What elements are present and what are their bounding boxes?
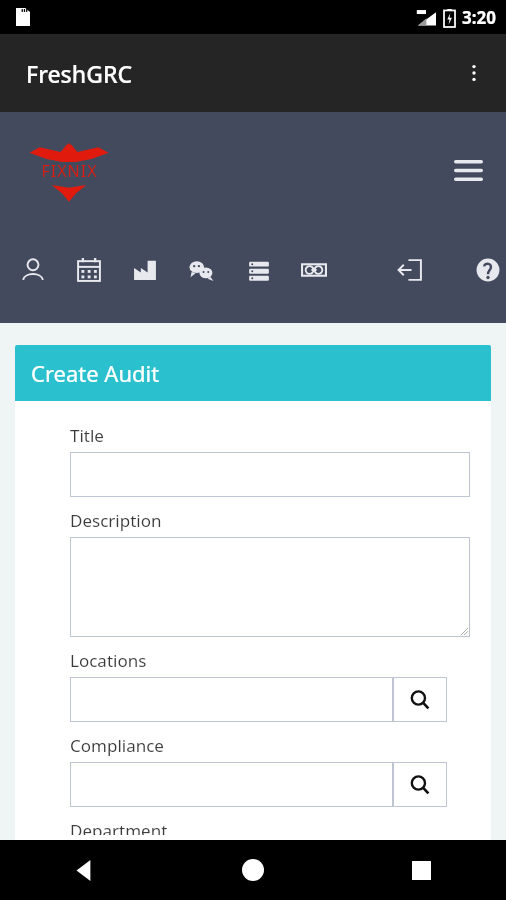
button[interactable]: Recents bbox=[337, 840, 506, 900]
button[interactable]: Calendar bbox=[73, 254, 105, 286]
staticText: Description bbox=[70, 509, 162, 532]
button[interactable]: Profile bbox=[17, 254, 49, 286]
button[interactable]: Home bbox=[168, 840, 337, 900]
button[interactable]: Menu bbox=[444, 147, 492, 195]
staticText: 3:20 bbox=[462, 6, 496, 29]
button[interactable]: Assets bbox=[298, 254, 330, 286]
button[interactable]: More options bbox=[450, 49, 498, 97]
button[interactable]: Search input bbox=[70, 762, 393, 807]
staticText: Compliance bbox=[70, 734, 164, 757]
button[interactable]: FixNix logo bbox=[26, 136, 112, 206]
button[interactable]: Back bbox=[0, 840, 168, 900]
staticText: Title bbox=[70, 424, 104, 447]
staticText: Department bbox=[70, 819, 168, 835]
button[interactable]: Records bbox=[243, 254, 275, 286]
staticText: FreshGRC bbox=[26, 58, 133, 89]
button[interactable]: Help bbox=[472, 254, 504, 286]
button[interactable]: Logout bbox=[394, 254, 426, 286]
staticText: Create Audit bbox=[31, 358, 160, 388]
staticText: FIXNIX bbox=[41, 160, 98, 182]
button[interactable]: Chat bbox=[186, 254, 218, 286]
button[interactable]: Search bbox=[393, 677, 447, 722]
button[interactable]: Search bbox=[393, 762, 447, 807]
button[interactable]: Search input bbox=[70, 677, 393, 722]
button[interactable]: Text input bbox=[70, 537, 470, 637]
button[interactable]: Text input bbox=[70, 452, 470, 497]
button[interactable]: Factory bbox=[129, 254, 161, 286]
staticText: Locations bbox=[70, 649, 147, 672]
